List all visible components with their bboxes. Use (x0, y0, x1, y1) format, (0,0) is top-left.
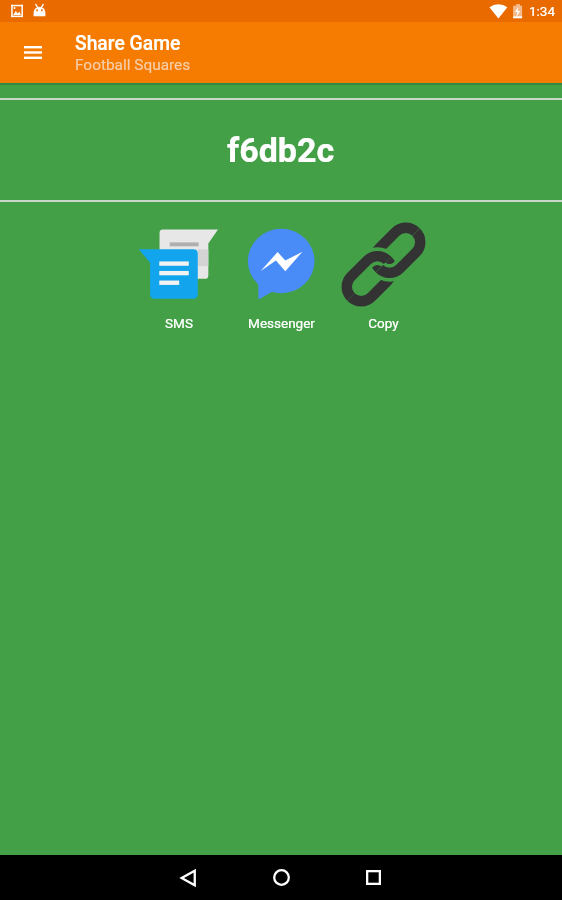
button[interactable]: Recent apps (327, 855, 419, 900)
button[interactable]: Open navigation menu (0, 22, 66, 83)
button[interactable]: Messenger (230, 222, 332, 331)
staticText: Football Squares (75, 56, 191, 74)
button[interactable]: SMS (128, 222, 230, 331)
staticText: Share Game (75, 32, 181, 55)
staticText: 1:34 (529, 3, 556, 19)
button[interactable]: Copy (332, 222, 434, 331)
staticText: f6db2c (227, 130, 335, 170)
staticText: SMS (165, 315, 193, 331)
staticText: Messenger (248, 315, 315, 331)
staticText: Copy (368, 315, 399, 331)
button[interactable]: Home (235, 855, 327, 900)
button[interactable]: Back (143, 855, 235, 900)
